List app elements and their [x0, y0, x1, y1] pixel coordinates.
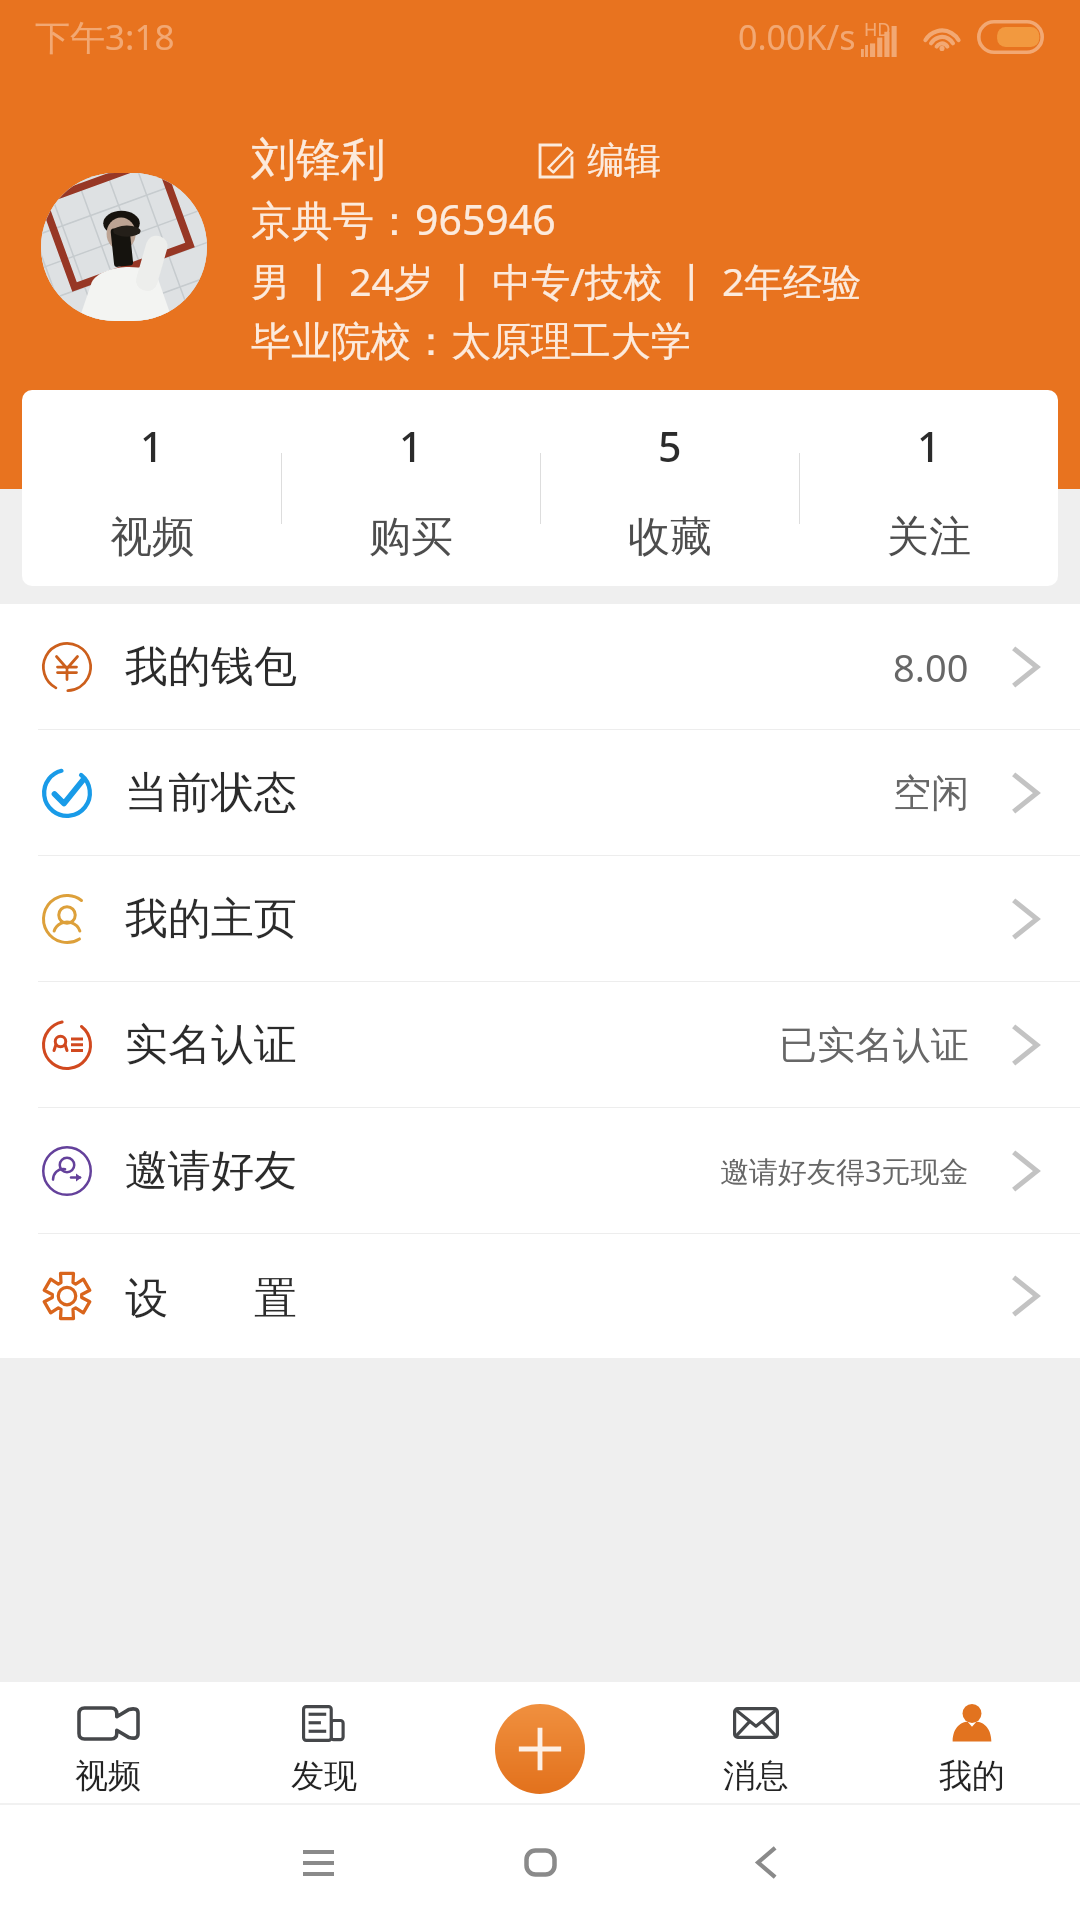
staticText: 消息 — [723, 1755, 789, 1797]
staticText: 已实名认证 — [779, 1021, 969, 1069]
button[interactable]: 我的主页 — [0, 856, 1080, 981]
staticText: 发现 — [291, 1755, 357, 1797]
button[interactable]: 发现 — [216, 1682, 432, 1803]
staticText: 京典号：965946 — [251, 191, 556, 247]
staticText: 当前状态 — [125, 766, 297, 820]
staticText: 视频 — [75, 1755, 141, 1797]
staticText: 实名认证 — [125, 1018, 297, 1072]
button[interactable]: Home — [480, 1805, 600, 1920]
button[interactable]: 1 — [800, 390, 1058, 586]
button[interactable]: Back — [706, 1805, 826, 1920]
staticText: 0.00K/s — [738, 14, 856, 60]
button[interactable]: 实名认证 — [0, 982, 1080, 1107]
button[interactable]: 设 置 — [0, 1234, 1080, 1358]
staticText: 编辑 — [587, 137, 661, 184]
button[interactable]: 视频 — [0, 1682, 216, 1803]
button[interactable]: Add — [495, 1704, 585, 1794]
staticText: 收藏 — [628, 511, 712, 564]
staticText: 1 — [917, 418, 941, 474]
button[interactable]: 邀请好友 — [0, 1108, 1080, 1233]
staticText: 我的钱包 — [125, 640, 297, 694]
staticText: 1 — [140, 418, 164, 474]
staticText: 设 置 — [125, 1267, 297, 1326]
staticText: 邀请好友得3元现金 — [720, 1151, 969, 1191]
staticText: 我的 — [939, 1755, 1005, 1797]
staticText: 毕业院校：太原理工大学 — [251, 316, 691, 366]
button[interactable]: 编辑 — [537, 137, 661, 184]
button[interactable]: Recents — [258, 1805, 378, 1920]
staticText: 我的主页 — [125, 892, 297, 946]
staticText: 1 — [399, 418, 423, 474]
button[interactable]: 1 — [22, 390, 281, 586]
button[interactable]: 5 — [541, 390, 799, 586]
staticText: 购买 — [369, 511, 453, 564]
button[interactable]: 我的钱包 — [0, 604, 1080, 729]
staticText: 刘锋利 — [251, 132, 386, 189]
staticText: 5 — [658, 418, 682, 474]
staticText: 下午3:18 — [35, 13, 175, 61]
staticText: 空闲 — [893, 769, 969, 817]
staticText: 8.00 — [893, 641, 969, 693]
staticText: 男 丨 24岁 丨 中专/技校 丨 2年经验 — [251, 254, 862, 307]
button[interactable]: 当前状态 — [0, 730, 1080, 855]
button[interactable]: 1 — [282, 390, 540, 586]
staticText: 视频 — [110, 511, 194, 564]
staticText: 关注 — [887, 511, 971, 564]
button[interactable]: 我的 — [864, 1682, 1080, 1803]
button[interactable]: 消息 — [648, 1682, 864, 1803]
staticText: 邀请好友 — [125, 1144, 297, 1198]
staticText: HD — [864, 17, 891, 42]
